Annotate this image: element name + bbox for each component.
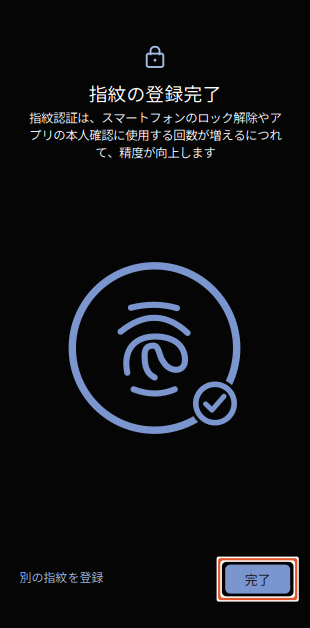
button[interactable]: 完了 xyxy=(217,557,299,602)
staticText: 指紋認証は、スマートフォンのロック解除やア プリの本人確認に使用する回数が増える… xyxy=(29,108,281,161)
staticText: 完了 xyxy=(245,570,271,588)
staticText: 指紋の登録完了 xyxy=(88,79,221,106)
staticText: 別の指紋を登録 xyxy=(20,568,104,585)
button[interactable]: 別の指紋を登録 xyxy=(16,562,108,591)
